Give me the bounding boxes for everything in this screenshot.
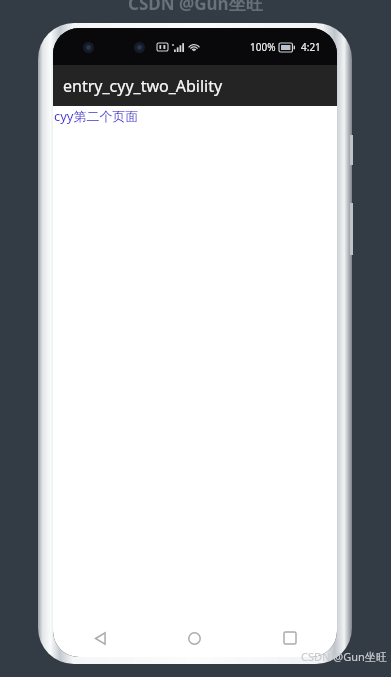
staticText: entry_cyy_two_Ability <box>63 75 223 97</box>
staticText: CSDN @Gun坐旺 <box>128 0 263 15</box>
button[interactable]: Home <box>147 619 242 657</box>
staticText: 4:21 <box>301 40 321 54</box>
staticText: CSDN @Gun坐旺 <box>301 649 387 664</box>
button[interactable]: Back <box>53 619 147 657</box>
staticText: 100% <box>250 40 276 54</box>
button[interactable]: cyy第二个页面 <box>54 107 139 125</box>
button[interactable]: Recent apps <box>242 619 337 657</box>
